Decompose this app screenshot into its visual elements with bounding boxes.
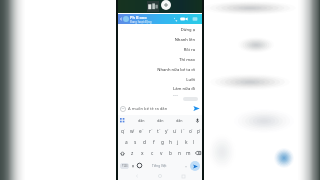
staticText: 9 — [191, 127, 193, 130]
button[interactable] — [183, 97, 198, 101]
staticText: 3 — [142, 127, 144, 130]
button[interactable]: p — [194, 126, 202, 136]
button[interactable]: dần — [138, 118, 145, 123]
button[interactable]: Recent apps — [179, 172, 187, 180]
button[interactable]: Emoji — [137, 163, 142, 168]
staticText: ?123 — [122, 164, 128, 168]
button[interactable]: dấn — [176, 118, 183, 123]
button[interactable]: z — [127, 148, 137, 158]
staticText: Lưới — [186, 77, 195, 83]
button[interactable]: o — [186, 126, 194, 136]
button[interactable]: e — [136, 126, 145, 136]
button[interactable]: ?123 — [120, 163, 129, 169]
staticText: Thì mao — [179, 57, 195, 63]
other: Back — [119, 17, 123, 21]
staticText: 7 — [175, 127, 177, 130]
staticText: dần — [138, 118, 145, 123]
button[interactable]: s — [131, 137, 140, 147]
button[interactable]: Back — [118, 14, 202, 24]
button[interactable]: Sticker — [120, 106, 126, 112]
staticText: Ph B ooo — [130, 15, 147, 20]
staticText: Đang hoạt động — [130, 20, 152, 24]
button[interactable]: a — [122, 137, 131, 147]
button[interactable]: l — [190, 137, 198, 147]
button[interactable]: Add — [161, 0, 171, 10]
staticText: p — [197, 128, 200, 135]
button[interactable]: u — [170, 126, 178, 136]
staticText: y — [165, 128, 168, 135]
button[interactable]: Details — [192, 16, 198, 22]
staticText: u — [173, 128, 176, 135]
staticText: a — [125, 139, 128, 146]
button[interactable]: j — [174, 137, 182, 147]
staticText: Nhanh nữa bé ta ơi — [157, 67, 195, 73]
button[interactable]: Home — [156, 172, 164, 180]
staticText: dân — [157, 118, 164, 123]
button[interactable]: f — [149, 137, 158, 147]
button[interactable]: k — [182, 137, 190, 147]
button[interactable]: t — [154, 126, 162, 136]
button[interactable]: h — [166, 137, 174, 147]
staticText: s — [134, 139, 137, 146]
button[interactable]: Thì mao — [118, 56, 195, 64]
button[interactable]: w — [127, 126, 136, 136]
staticText: 2:47 — [173, 93, 178, 96]
staticText: Nhanh lên — [174, 37, 195, 43]
staticText: r — [149, 128, 151, 135]
button[interactable]: Nhanh lên — [118, 36, 195, 44]
button[interactable] — [184, 164, 188, 168]
button[interactable] — [131, 164, 135, 168]
button[interactable]: Send — [193, 105, 200, 112]
staticText: 8 — [183, 127, 185, 130]
staticText: m — [186, 150, 191, 157]
button[interactable]: b — [166, 148, 175, 158]
staticText: A muốn bé tè ra dần — [128, 106, 193, 112]
button[interactable]: dân — [157, 118, 164, 123]
staticText: g — [161, 139, 164, 146]
button[interactable]: n — [175, 148, 184, 158]
button[interactable]: Tiếng Việt — [152, 160, 184, 171]
staticText: q — [121, 128, 124, 135]
button[interactable]: Video call — [180, 15, 188, 23]
staticText: Dừng ạ — [180, 27, 195, 33]
staticText: b — [169, 150, 172, 157]
button[interactable]: Dừng ạ — [118, 26, 195, 34]
button[interactable]: q — [118, 126, 127, 136]
staticText: w — [130, 128, 134, 135]
staticText: Làm nữa đi — [173, 86, 195, 92]
button[interactable]: Làm nữa đi — [118, 85, 195, 93]
button[interactable]: g — [158, 137, 166, 147]
staticText: 2 — [133, 127, 135, 130]
button[interactable]: v — [157, 148, 166, 158]
button[interactable]: Shift — [118, 148, 127, 158]
button[interactable]: x — [137, 148, 147, 158]
staticText: 4 — [151, 127, 153, 130]
button[interactable]: m — [184, 148, 193, 158]
staticText: 5 — [159, 127, 161, 130]
staticText: k — [185, 139, 188, 146]
button[interactable]: y — [162, 126, 170, 136]
staticText: c — [151, 150, 154, 157]
button[interactable]: Send message — [190, 161, 200, 171]
staticText: n — [178, 150, 181, 157]
staticText: f — [153, 139, 155, 146]
staticText: z — [131, 150, 134, 157]
button[interactable]: Backspace — [193, 148, 202, 158]
staticText: 6 — [167, 127, 169, 130]
button[interactable]: i — [178, 126, 186, 136]
button[interactable]: Rồi ra — [118, 46, 195, 54]
staticText: 1 — [124, 127, 126, 130]
button[interactable]: Nhanh nữa bé ta ơi — [118, 66, 195, 74]
button[interactable]: Call — [173, 17, 178, 22]
button[interactable]: Lưới — [118, 76, 195, 84]
button[interactable]: d — [140, 137, 149, 147]
staticText: d — [143, 139, 146, 146]
button[interactable]: r — [145, 126, 154, 136]
staticText: Tiếng Việt — [152, 164, 167, 168]
staticText: v — [160, 150, 163, 157]
staticText: Rồi ra — [183, 47, 195, 53]
button[interactable]: c — [147, 148, 157, 158]
button[interactable]: Toolbar — [120, 118, 125, 123]
button[interactable]: Voice input — [195, 118, 200, 123]
